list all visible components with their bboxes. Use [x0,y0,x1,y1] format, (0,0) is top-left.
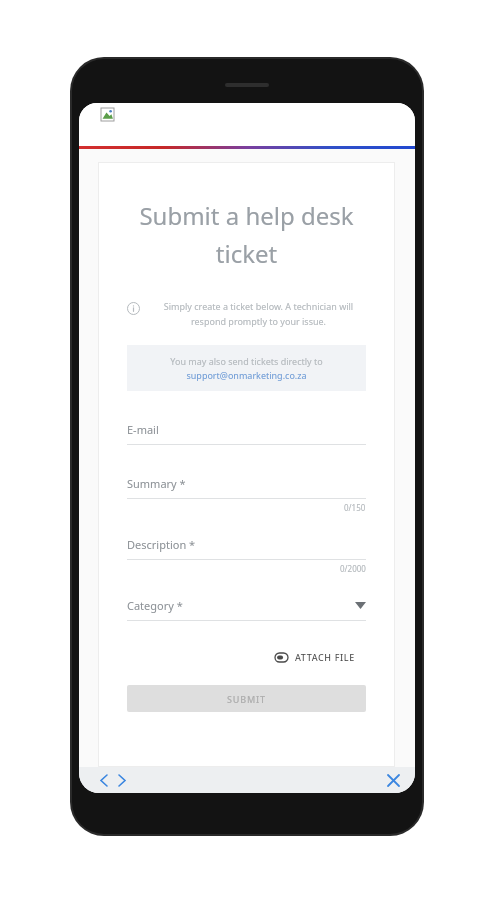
staticText: ATTACH FILE [295,651,355,663]
button[interactable]: support@onmarketing.co.za [186,369,307,381]
button[interactable]: Close [384,771,402,789]
button[interactable]: Description * [127,533,366,574]
staticText: support@onmarketing.co.za [186,369,307,381]
button[interactable]: E-mail [127,418,366,445]
button[interactable]: Category * [127,594,366,621]
staticText: E-mail [127,422,159,437]
staticText: Category * [127,598,355,613]
staticText: Description * [127,537,196,552]
button[interactable]: SUBMIT [127,685,366,712]
staticText: 0/150 [344,502,366,513]
staticText: You may also send tickets directly to [170,355,323,367]
button[interactable]: Forward [113,771,131,789]
button[interactable]: ATTACH FILE [264,643,366,671]
staticText: 0/2000 [340,563,366,574]
staticText: Submit a help desk ticket [127,199,366,270]
button[interactable]: Summary * [127,472,366,513]
staticText: Summary * [127,476,186,491]
staticText: Simply create a ticket below. A technici… [151,300,366,327]
staticText: SUBMIT [227,693,266,705]
button[interactable]: Back [95,771,113,789]
